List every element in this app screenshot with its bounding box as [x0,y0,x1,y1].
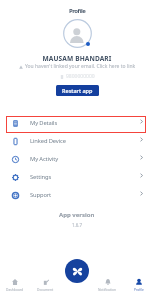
staticText: Profile [134,287,144,291]
button[interactable]: Document [30,270,61,291]
button[interactable]: Restart app [56,85,99,96]
button[interactable]: Notification [92,270,123,291]
staticText: Linked Device [30,137,66,145]
staticText: App version [59,211,95,219]
button[interactable]: Scan [65,259,89,283]
button[interactable]: My Activity [0,150,154,168]
staticText: Profile [69,7,86,15]
button[interactable]: Linked Device [0,132,154,150]
button[interactable]: Settings [0,168,154,186]
staticText: Dashboard [6,287,24,291]
staticText: 1.6.7 [72,222,83,228]
staticText: Document [37,287,54,291]
staticText: My Details [30,119,58,127]
button[interactable]: My Details [0,114,154,132]
staticText: You haven't linked your email. Click her… [25,63,136,70]
staticText: Support [30,191,52,199]
staticText: 9800000000 [66,73,95,80]
button[interactable]: Profile [123,270,154,291]
staticText: Restart app [62,87,93,94]
staticText: Settings [30,173,52,181]
staticText: Notification [98,287,117,291]
button[interactable]: Support [0,186,154,204]
button[interactable]: Dashboard [0,270,30,291]
staticText: My Activity [30,155,58,163]
button[interactable]: You haven't linked your email. Click her… [0,63,154,70]
staticText: MAUSAM BHANDARI [0,54,154,63]
